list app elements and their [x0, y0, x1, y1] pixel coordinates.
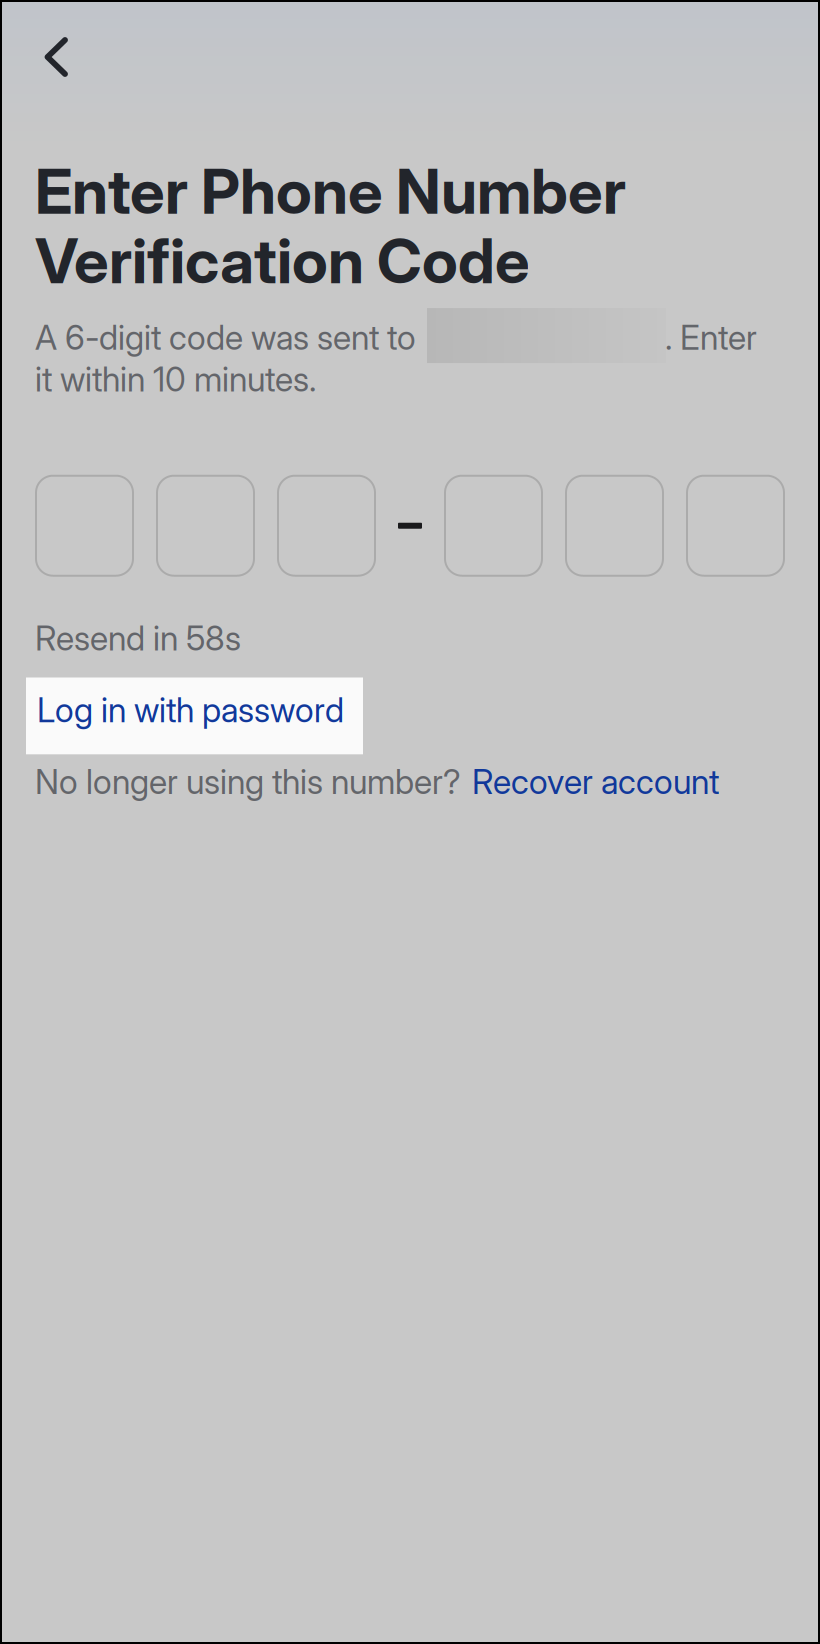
staticText: A 6-digit code was sent to: [35, 317, 416, 358]
staticText: Verification Code: [35, 223, 530, 298]
button[interactable]: Recover account: [472, 761, 719, 802]
staticText: Log in with password: [37, 689, 344, 730]
button[interactable]: Log in with password: [26, 677, 363, 754]
staticText: No longer using this number?: [35, 761, 461, 802]
staticText: it within 10 minutes.: [35, 359, 316, 400]
staticText: Resend in 58s: [35, 618, 241, 658]
staticText: Recover account: [472, 761, 719, 802]
button[interactable]: Back: [0, 0, 102, 101]
staticText: Enter Phone Number: [35, 154, 626, 228]
staticText: . Enter: [665, 317, 757, 358]
